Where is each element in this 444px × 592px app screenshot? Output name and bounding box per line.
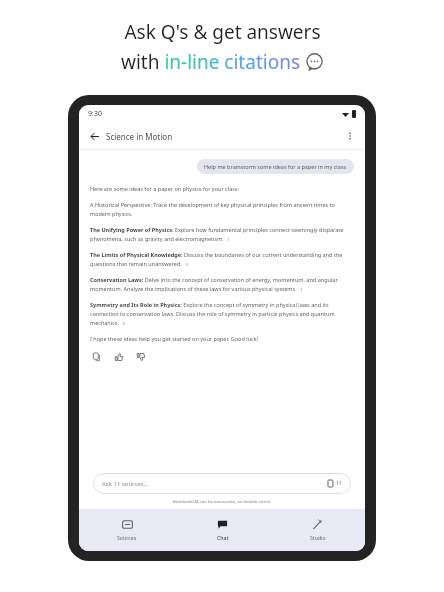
staticText: Ask Q's & get answers [124, 19, 321, 45]
button[interactable]: Ask 11 sources... [93, 473, 351, 494]
staticText: The Unifying Power of Physics: Explore h… [90, 226, 354, 242]
button[interactable]: Chat [175, 509, 270, 551]
button[interactable]: Copy [90, 350, 103, 363]
button[interactable]: Back [86, 128, 102, 144]
button[interactable]: More options [342, 128, 358, 144]
staticText: Here are some ideas for a paper on physi… [90, 185, 239, 192]
button[interactable]: Sources [79, 509, 175, 551]
button[interactable]: Studio [270, 509, 365, 551]
staticText: with in-line citations [121, 49, 300, 75]
staticText: The Limits of Physical Knowledge: Discus… [90, 251, 354, 267]
button[interactable]: Help me brainstorm some ideas for a pape… [197, 159, 354, 174]
button[interactable]: Thumbs down [134, 350, 147, 363]
staticText: Conservation Laws: Delve into the concep… [90, 276, 354, 292]
staticText: NotebookLM can be inaccurate, so double-… [93, 498, 351, 504]
staticText: Sources [117, 534, 137, 541]
staticText: Studio [310, 534, 326, 541]
button[interactable]: Thumbs up [112, 350, 125, 363]
staticText: 11 [336, 480, 342, 487]
staticText: Symmetry and Its Role in Physics: Explor… [90, 301, 354, 326]
staticText: Chat [217, 534, 229, 541]
staticText: Science in Motion [106, 131, 173, 142]
staticText: I hope these ideas help you get started … [90, 335, 259, 342]
staticText: A Historical Perspective: Trace the deve… [90, 201, 354, 217]
staticText: 9:30 [88, 109, 102, 119]
staticText: Ask 11 sources... [102, 480, 149, 488]
staticText: Help me brainstorm some ideas for a pape… [204, 163, 347, 170]
